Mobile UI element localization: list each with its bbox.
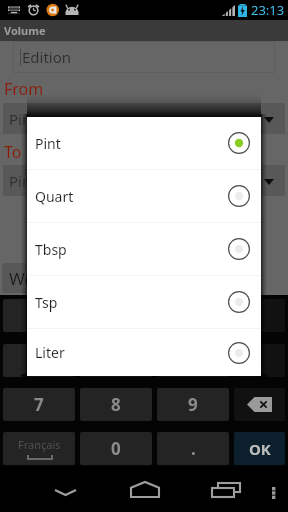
button[interactable]: 4 <box>3 344 75 377</box>
button[interactable]: Français <box>3 432 75 465</box>
staticText: 0 <box>111 437 121 460</box>
button[interactable]: Pint <box>3 165 285 196</box>
staticText: 4 <box>34 349 44 372</box>
button[interactable]: 6 <box>157 344 229 377</box>
staticText: OK <box>249 439 271 459</box>
button[interactable]: Weight <box>2 263 142 293</box>
button[interactable]: 9 <box>157 299 229 332</box>
staticText: Liter <box>35 343 65 362</box>
button[interactable]: More options <box>258 466 287 512</box>
button[interactable]: Edition <box>13 41 275 73</box>
button[interactable]: 0 <box>80 432 152 465</box>
button[interactable]: Tbsp <box>27 223 261 275</box>
button[interactable]: 9 <box>157 388 229 421</box>
button[interactable]: 5 <box>80 344 152 377</box>
button[interactable]: . <box>157 432 229 465</box>
staticText: Pint <box>9 109 37 129</box>
staticText: . <box>191 437 196 460</box>
button[interactable]: 7 <box>3 388 75 421</box>
staticText: 7 <box>34 304 44 327</box>
button[interactable]: Delete <box>234 344 285 377</box>
staticText: Volume <box>4 23 46 38</box>
button[interactable]: Tsp <box>27 276 261 328</box>
button[interactable]: 8 <box>80 388 152 421</box>
button[interactable]: Pint <box>27 117 261 169</box>
button[interactable]: Recent apps <box>205 466 247 512</box>
staticText: Quart <box>35 187 74 206</box>
button[interactable]: Quart <box>27 170 261 222</box>
staticText: Pint <box>35 134 61 153</box>
staticText: 7 <box>34 393 44 416</box>
button[interactable]: 7 <box>3 299 75 332</box>
button[interactable]: Home <box>124 466 166 512</box>
staticText: 8 <box>111 393 121 416</box>
staticText: 23:13 <box>251 1 285 19</box>
staticText: Français <box>18 437 61 452</box>
staticText: Pint <box>9 171 37 191</box>
button[interactable]: Pint <box>3 103 285 134</box>
button[interactable]: Backspace <box>234 388 285 421</box>
staticText: Weight <box>9 267 66 290</box>
staticText: 9 <box>188 393 198 416</box>
button[interactable]: Hide keyboard <box>44 470 86 508</box>
staticText: From <box>4 78 44 100</box>
button[interactable]: Liter <box>27 329 261 376</box>
button[interactable]: Delete <box>234 299 285 332</box>
staticText: To <box>4 141 22 163</box>
staticText: Tbsp <box>35 240 67 259</box>
staticText: Tsp <box>35 293 58 312</box>
button[interactable]: OK <box>234 432 285 465</box>
staticText: Edition <box>22 47 72 67</box>
